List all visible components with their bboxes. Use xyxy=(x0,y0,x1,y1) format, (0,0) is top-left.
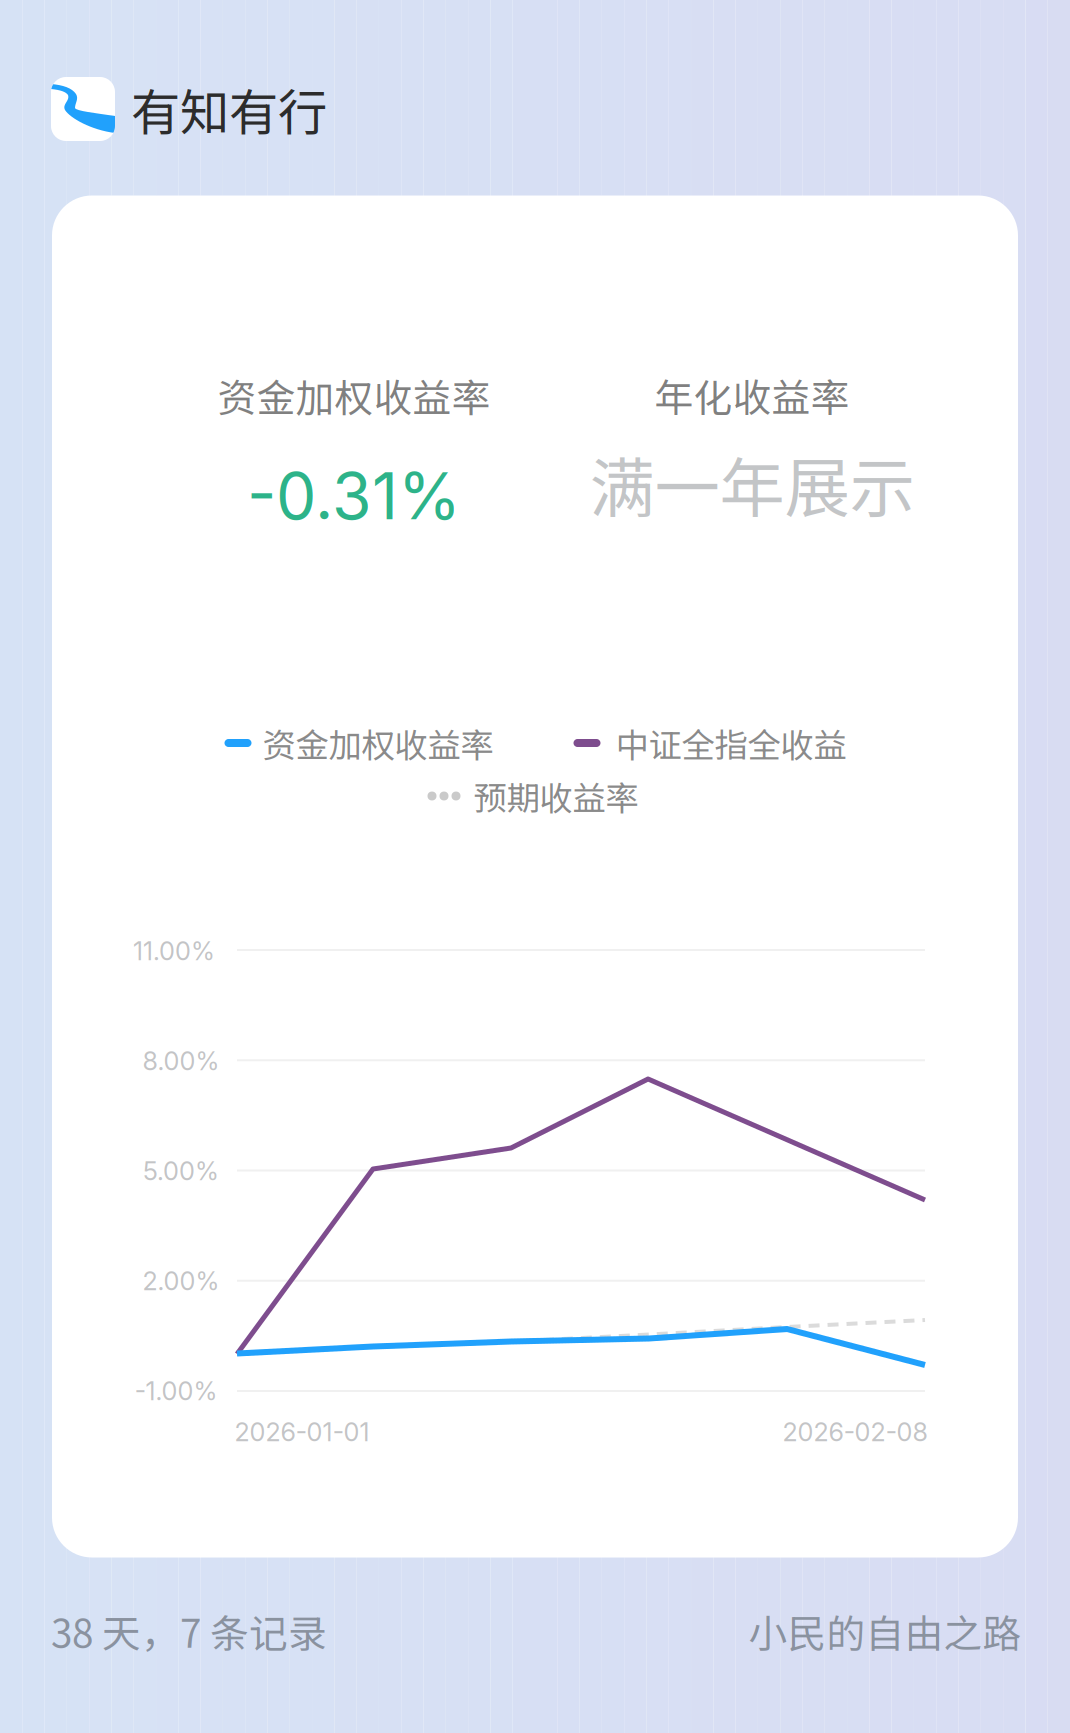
staticText: -1.00% xyxy=(134,1376,217,1406)
button[interactable]: 年化收益率 xyxy=(589,367,914,531)
staticText: 有知有行 xyxy=(131,73,327,145)
staticText: 年化收益率 xyxy=(654,367,849,423)
button[interactable]: 有知有行 xyxy=(51,73,327,145)
button[interactable]: 38 天，7 条记录 xyxy=(51,1603,327,1659)
button[interactable]: 中证全指全收益 xyxy=(573,719,846,767)
button[interactable]: 资金加权收益率 xyxy=(224,719,493,767)
staticText: 资金加权收益率 xyxy=(262,719,493,767)
button[interactable]: 预期收益率 xyxy=(427,772,638,820)
staticText: 2.00% xyxy=(142,1266,219,1296)
staticText: 11.00% xyxy=(133,936,215,966)
staticText: 满一年展示 xyxy=(589,436,914,531)
button[interactable]: 资金加权收益率 xyxy=(217,367,490,535)
staticText: 38 天，7 条记录 xyxy=(51,1603,327,1659)
staticText: 5.00% xyxy=(143,1156,219,1186)
staticText: 中证全指全收益 xyxy=(615,719,846,767)
staticText: 预期收益率 xyxy=(473,772,638,820)
button[interactable]: Performance card xyxy=(52,195,1018,1557)
staticText: 2026-02-08 xyxy=(782,1417,927,1447)
staticText: 小民的自由之路 xyxy=(748,1603,1021,1659)
button[interactable]: 小民的自由之路 xyxy=(748,1603,1021,1659)
staticText: 2026-01-01 xyxy=(234,1417,369,1447)
staticText: -0.31% xyxy=(247,457,461,535)
staticText: 资金加权收益率 xyxy=(217,367,490,423)
staticText: 8.00% xyxy=(142,1046,219,1076)
